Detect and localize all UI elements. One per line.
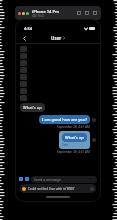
button[interactable]: User: [51, 35, 65, 41]
button[interactable]: Could not find User with id '8000': [20, 184, 96, 193]
staticText: Sent: [62, 143, 69, 147]
button[interactable]: Message: [20, 81, 27, 87]
button[interactable]: Message: [20, 74, 27, 80]
button[interactable]: Dismiss: [90, 187, 94, 191]
button[interactable]: Back: [20, 34, 28, 42]
button[interactable]: Send a message: [31, 176, 97, 183]
button[interactable]: Message: [20, 53, 27, 59]
button[interactable]: I am good how are you?: [39, 115, 90, 124]
button[interactable]: Home: [76, 10, 82, 16]
staticText: Send a message: [34, 177, 61, 182]
button[interactable]: What's up: [20, 103, 45, 112]
staticText: September 28, 4:41 AM: [57, 150, 90, 154]
staticText: I am good how are you?: [42, 117, 87, 122]
staticText: Could not find User with id '8000': [28, 187, 75, 191]
staticText: iPhone 14 Pro: [32, 9, 60, 14]
staticText: 4:54: [24, 26, 32, 31]
button[interactable]: Rotate: [92, 10, 98, 16]
staticText: What's up: [65, 135, 84, 140]
button[interactable]: Message: [20, 46, 27, 52]
button[interactable]: Message: [20, 88, 27, 94]
staticText: What's up: [23, 105, 42, 110]
button[interactable]: Message: [20, 67, 27, 73]
button[interactable]: Message: [20, 60, 27, 66]
button[interactable]: What's up: [59, 131, 90, 149]
staticText: September 28, 4:41 AM: [57, 125, 90, 129]
button[interactable]: Message: [20, 95, 27, 101]
staticText: iOS 16.0: [32, 14, 44, 18]
button[interactable]: Screenshot: [84, 10, 90, 16]
staticText: User: [51, 35, 62, 41]
